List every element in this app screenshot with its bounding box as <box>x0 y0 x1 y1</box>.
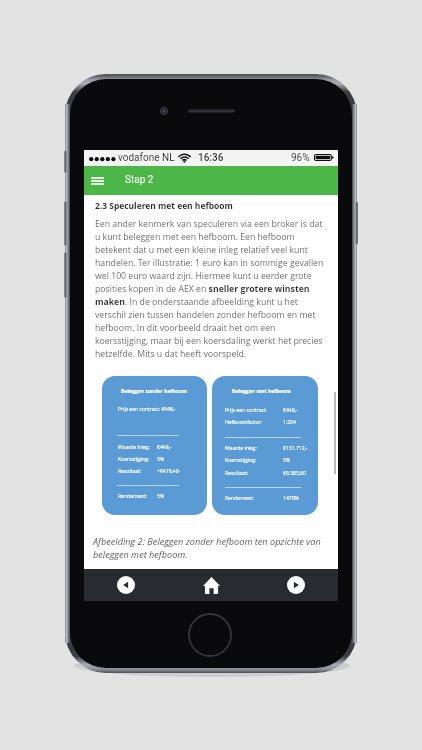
staticText: Prijs een contract: €448,- <box>118 406 176 413</box>
staticText: vodafone NL <box>118 152 175 164</box>
staticText: Afbeelding 2: Beleggen zonder hefboom te… <box>93 535 326 560</box>
staticText: 2.3 Speculeren met een hefboom <box>95 200 233 212</box>
button[interactable]: Open navigation menu <box>85 172 109 190</box>
staticText: Resultaat: <box>118 468 142 475</box>
button[interactable]: Open navigation menu <box>84 166 338 195</box>
staticText: Rendement: <box>118 493 147 500</box>
staticText: 5% <box>283 457 291 464</box>
button[interactable]: Next page <box>282 571 310 599</box>
staticText: Hefboomfactor: <box>225 419 263 426</box>
staticText: Waarde inleg: <box>118 444 150 451</box>
staticText: Rendement: <box>225 495 254 502</box>
staticText: 5% <box>157 456 165 463</box>
button[interactable]: Previous page <box>112 571 140 599</box>
staticText: Beleggen met hefboom <box>232 388 291 395</box>
staticText: 1:294 <box>283 419 296 426</box>
staticText: Koersstijging: <box>118 456 150 463</box>
staticText: €131.712,- <box>283 445 308 452</box>
staticText: Beleggen zonder hefboom <box>121 388 188 395</box>
staticText: Prijs een contract: <box>225 407 268 414</box>
staticText: Koersstijging: <box>225 457 257 464</box>
staticText: 1470% <box>283 495 299 502</box>
staticText: +€470,40- <box>157 468 181 475</box>
button[interactable]: Home <box>197 571 225 599</box>
staticText: Resultaat: <box>225 470 249 477</box>
staticText: 16:36 <box>198 152 224 164</box>
staticText: €448,- <box>157 444 172 451</box>
staticText: Een ander kenmerk van speculeren via een… <box>95 218 324 360</box>
staticText: €6.585,60 <box>283 470 306 477</box>
staticText: 5% <box>157 493 165 500</box>
staticText: Stap 2 <box>125 174 154 186</box>
staticText: €448,- <box>283 407 298 414</box>
staticText: 96% <box>291 152 310 164</box>
staticText: Waarde inleg: <box>225 445 257 452</box>
